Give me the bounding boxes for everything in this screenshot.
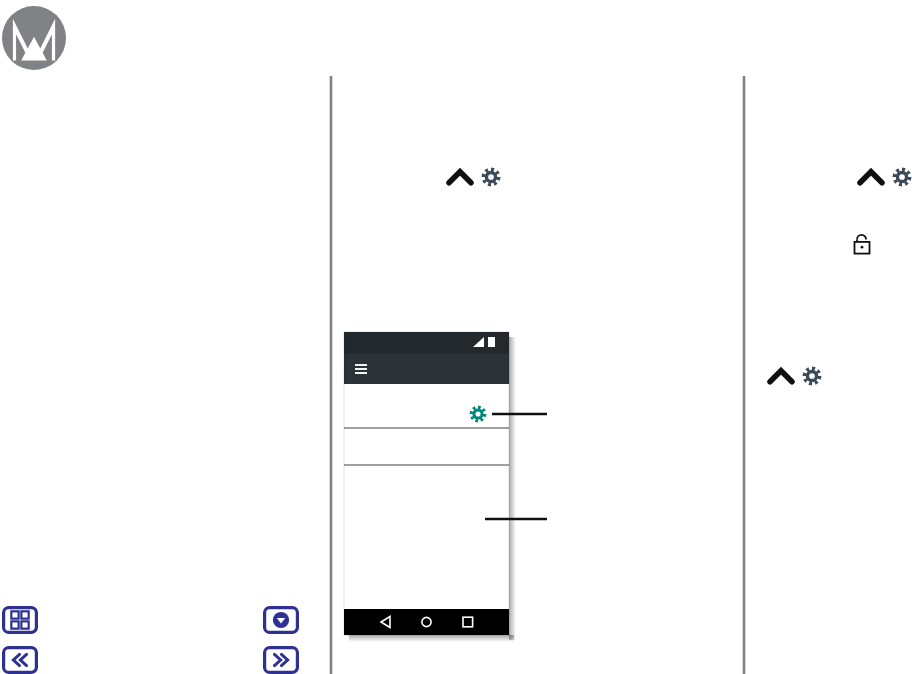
button[interactable]: App menu xyxy=(2,606,38,634)
button[interactable]: Previous xyxy=(2,646,38,674)
button[interactable]: Expand xyxy=(263,606,299,634)
button[interactable]: Next xyxy=(263,646,299,674)
button[interactable]: Motorola logo xyxy=(2,6,66,70)
